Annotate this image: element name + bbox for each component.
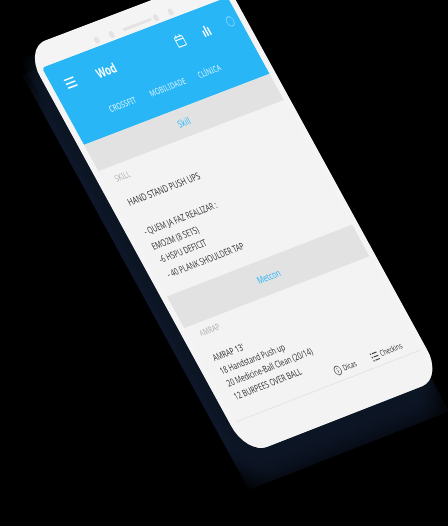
button[interactable]: Calendar: [166, 27, 193, 54]
button[interactable]: MOBILIDADE: [141, 68, 195, 106]
staticText: - 40 PLANK SHOULDER TAP: [164, 239, 246, 280]
button[interactable]: CLÍNICA: [189, 55, 229, 87]
staticText: -6 HSPU DEFICIT: [156, 236, 209, 265]
button[interactable]: 0 comentários: [382, 381, 430, 401]
staticText: EMO2M (8 SETS): [149, 223, 201, 252]
staticText: Dicas: [340, 358, 359, 373]
staticText: AMRAP: [197, 320, 222, 339]
staticText: - QUEM JA FAZ REALIZAR :: [141, 198, 219, 237]
staticText: Checkins: [377, 340, 404, 358]
button[interactable]: Statistics: [192, 17, 219, 44]
staticText: 18 Handstand Push up: [217, 340, 288, 377]
button[interactable]: Dicas: [329, 355, 362, 379]
button[interactable]: Menu: [56, 68, 84, 96]
staticText: HAND STAND PUSH UPS: [125, 169, 203, 209]
staticText: Wod: [92, 58, 119, 79]
button[interactable]: Skill: [84, 74, 284, 171]
button[interactable]: Metcon: [167, 225, 370, 328]
button[interactable]: Checkins: [366, 337, 407, 365]
button[interactable]: Help: [216, 7, 243, 35]
button[interactable]: CROSSFIT: [100, 87, 145, 121]
staticText: SKILL: [112, 168, 133, 184]
staticText: CROSSFIT: [106, 94, 139, 114]
staticText: 12 BURPEES OVER BALL: [231, 365, 304, 402]
staticText: AMRAP 13': [210, 340, 247, 364]
staticText: MOBILIDADE: [147, 75, 188, 99]
staticText: CLÍNICA: [195, 61, 223, 80]
staticText: Metcon: [254, 266, 283, 287]
staticText: 20 Medicine-Ball Clean (20/14): [224, 344, 315, 389]
staticText: Skill: [175, 114, 194, 131]
